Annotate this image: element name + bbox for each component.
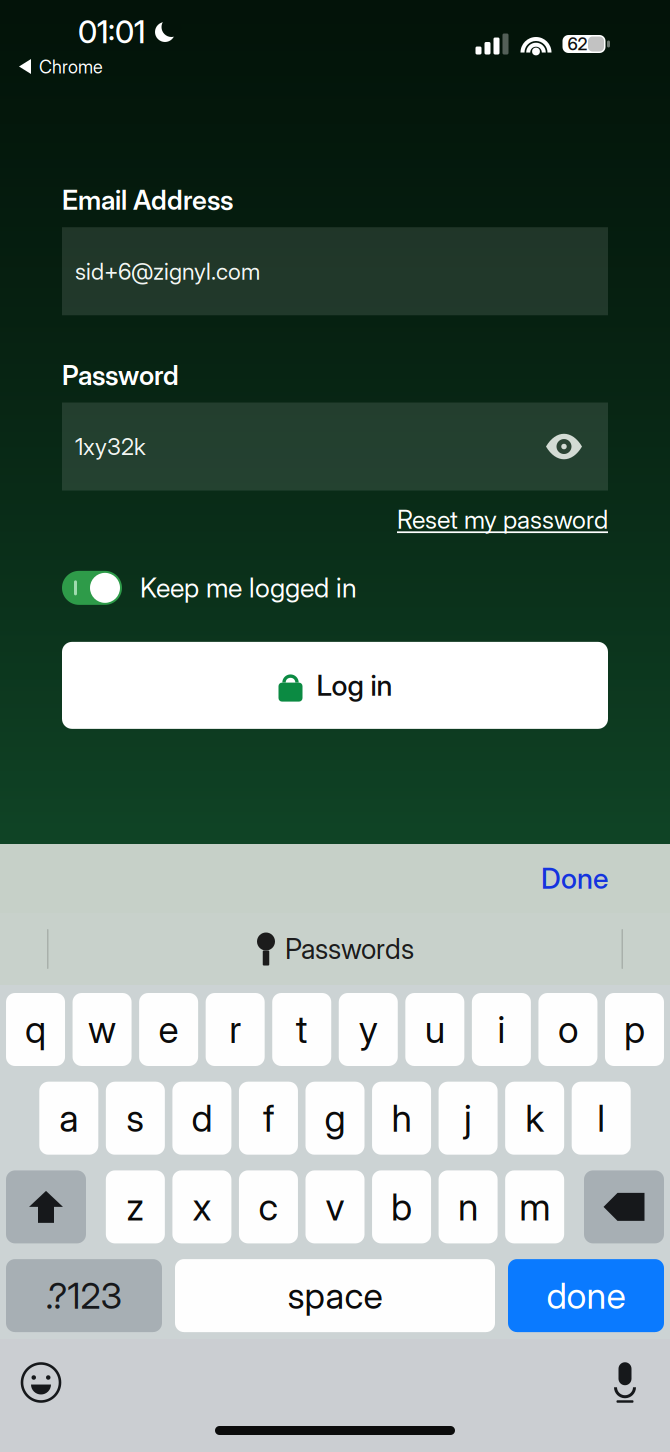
staticText: m: [519, 1184, 550, 1229]
staticText: n: [458, 1184, 478, 1229]
staticText: i: [497, 1007, 505, 1052]
button[interactable]: Dictate: [598, 1355, 652, 1409]
staticText: s: [126, 1096, 144, 1141]
staticText: r: [229, 1007, 241, 1052]
button[interactable]: Emoji: [14, 1355, 68, 1409]
button[interactable]: c: [239, 1170, 298, 1243]
staticText: l: [597, 1096, 605, 1141]
button[interactable]: w: [73, 993, 132, 1066]
staticText: Chrome: [39, 56, 103, 78]
button[interactable]: Delete: [584, 1170, 664, 1243]
button[interactable]: n: [439, 1170, 498, 1243]
button[interactable]: k: [505, 1082, 564, 1155]
button[interactable]: e: [139, 993, 198, 1066]
button[interactable]: s: [106, 1082, 165, 1155]
staticText: done: [546, 1274, 625, 1317]
button[interactable]: done: [508, 1259, 664, 1332]
button[interactable]: m: [505, 1170, 564, 1243]
button[interactable]: i: [472, 993, 531, 1066]
staticText: .?123: [45, 1274, 122, 1317]
staticText: e: [159, 1007, 179, 1052]
staticText: v: [325, 1184, 344, 1229]
staticText: Log in: [316, 668, 392, 703]
staticText: Done: [541, 861, 608, 896]
button[interactable]: h: [372, 1082, 431, 1155]
button[interactable]: t: [272, 993, 331, 1066]
staticText: z: [126, 1184, 144, 1229]
staticText: Passwords: [285, 932, 414, 966]
button[interactable]: x: [172, 1170, 231, 1243]
button[interactable]: f: [239, 1082, 298, 1155]
button[interactable]: v: [305, 1170, 364, 1243]
staticText: h: [392, 1096, 412, 1141]
staticText: p: [624, 1007, 645, 1052]
button[interactable]: u: [405, 993, 464, 1066]
staticText: o: [558, 1007, 578, 1052]
button[interactable]: Show password: [546, 434, 608, 458]
button[interactable]: d: [172, 1082, 231, 1155]
staticText: Password: [62, 359, 179, 392]
staticText: w: [88, 1007, 116, 1052]
button[interactable]: p: [605, 993, 664, 1066]
button[interactable]: a: [39, 1082, 98, 1155]
staticText: q: [25, 1007, 46, 1052]
button[interactable]: Back to Chrome: [0, 54, 113, 80]
button[interactable]: r: [206, 993, 265, 1066]
staticText: f: [263, 1096, 274, 1141]
button[interactable]: l: [572, 1082, 631, 1155]
staticText: j: [464, 1096, 472, 1141]
staticText: t: [296, 1007, 308, 1052]
button[interactable]: Shift: [6, 1170, 86, 1243]
staticText: 01:01: [78, 13, 145, 50]
button[interactable]: space: [175, 1259, 495, 1332]
staticText: Email Address: [62, 184, 233, 216]
button[interactable]: z: [106, 1170, 165, 1243]
staticText: 1xy32k: [75, 433, 146, 460]
staticText: y: [359, 1007, 378, 1052]
button[interactable]: .?123: [6, 1259, 162, 1332]
button[interactable]: j: [439, 1082, 498, 1155]
staticText: c: [258, 1184, 278, 1229]
staticText: sid+6@zignyl.com: [75, 257, 260, 285]
staticText: d: [191, 1096, 212, 1141]
button[interactable]: Keep me logged in: [62, 567, 357, 609]
staticText: b: [391, 1184, 412, 1229]
button[interactable]: Passwords: [185, 913, 485, 985]
button[interactable]: y: [339, 993, 398, 1066]
button[interactable]: g: [305, 1082, 364, 1155]
staticText: a: [59, 1096, 78, 1141]
staticText: Reset my password: [397, 504, 608, 535]
button[interactable]: q: [6, 993, 65, 1066]
staticText: space: [287, 1274, 382, 1317]
button[interactable]: Log in: [62, 642, 608, 729]
staticText: u: [425, 1007, 445, 1052]
staticText: k: [525, 1096, 544, 1141]
staticText: 62: [567, 33, 587, 54]
staticText: g: [324, 1096, 345, 1141]
button[interactable]: b: [372, 1170, 431, 1243]
staticText: Keep me logged in: [140, 572, 357, 604]
button[interactable]: o: [538, 993, 597, 1066]
button[interactable]: Reset my password: [397, 504, 608, 535]
staticText: x: [192, 1184, 211, 1229]
button[interactable]: Done: [523, 853, 626, 904]
